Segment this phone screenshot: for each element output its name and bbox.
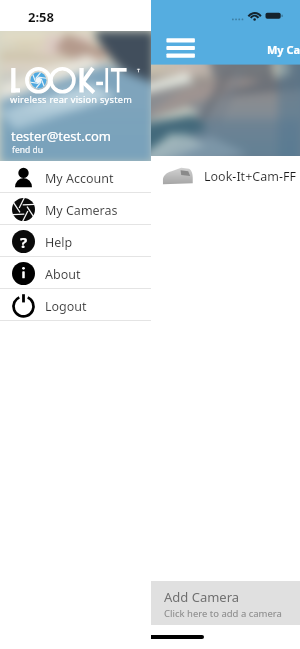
staticText: wireless rear vision system: [10, 93, 133, 106]
button[interactable]: ?: [0, 225, 151, 257]
staticText: Click here to add a camera: [164, 607, 282, 620]
staticText: Help: [45, 234, 73, 251]
button[interactable]: Add Camera: [151, 581, 300, 625]
staticText: tester@test.com: [11, 127, 112, 145]
staticText: My Cameras: [45, 202, 118, 219]
staticText: fend du: [12, 144, 43, 156]
staticText: ?: [20, 232, 28, 252]
button[interactable]: About: [0, 257, 151, 289]
staticText: My Account: [45, 170, 114, 187]
button[interactable]: My Cameras: [0, 193, 151, 225]
staticText: 2:58: [28, 8, 54, 26]
button[interactable]: Open navigation menu: [161, 33, 200, 63]
button[interactable]: My Account: [0, 161, 151, 193]
staticText: Look-It+Cam-FF: [204, 168, 296, 185]
staticText: My Cameras: [267, 42, 300, 57]
staticText: Add Camera: [164, 588, 240, 606]
staticText: Logout: [45, 298, 87, 315]
staticText: About: [45, 266, 81, 283]
button[interactable]: Logout: [0, 289, 151, 321]
button[interactable]: Look-It+Cam-FF: [0, 156, 300, 196]
